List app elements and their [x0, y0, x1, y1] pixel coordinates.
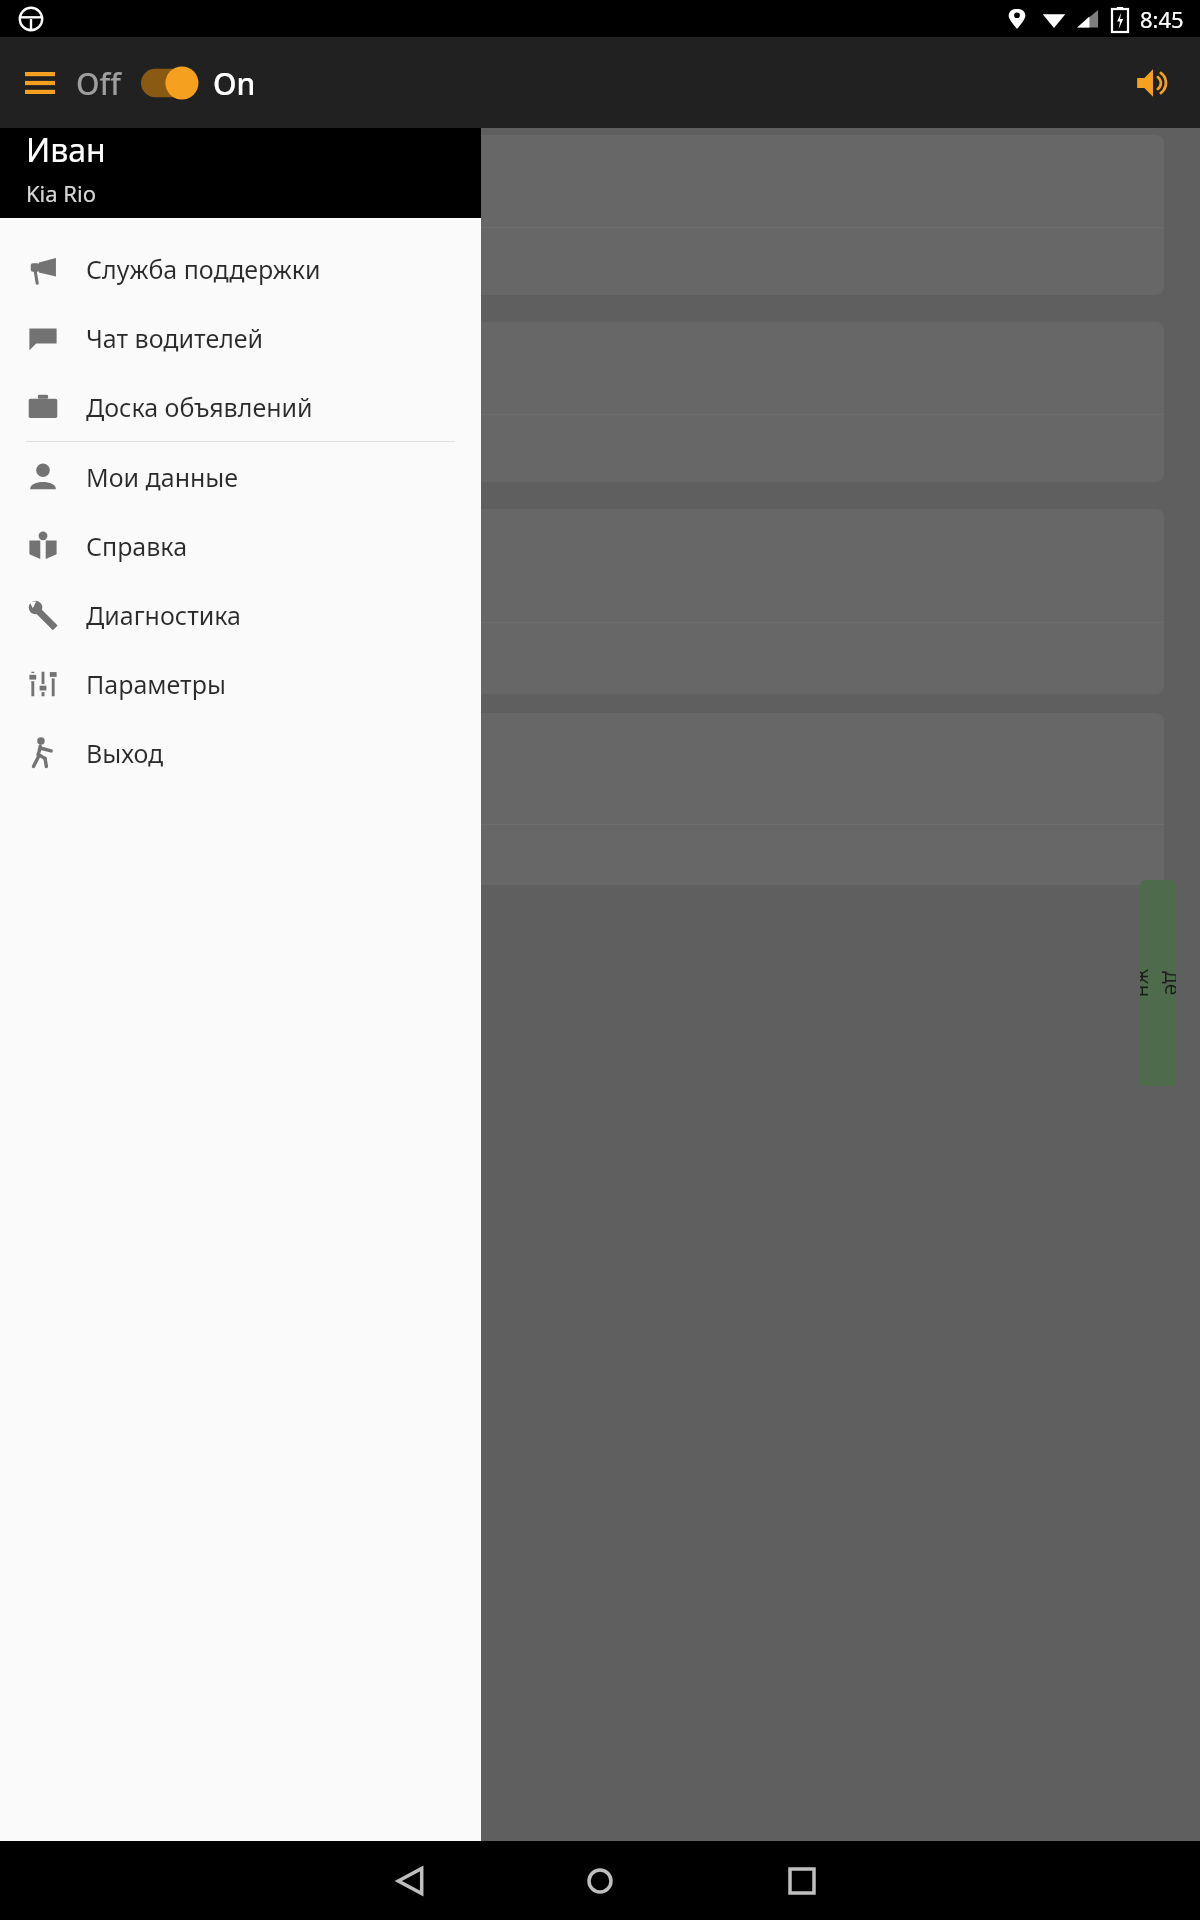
button[interactable]: Sound	[1126, 56, 1180, 110]
button[interactable]: Справка	[0, 511, 481, 580]
staticText: 8:45	[1140, 4, 1184, 34]
staticText: Служба поддержки	[86, 252, 321, 286]
staticText: Иван	[26, 128, 106, 172]
button[interactable]: Служба поддержки	[0, 234, 481, 303]
button[interactable]: Параметры	[0, 649, 481, 718]
staticText: Off	[76, 63, 121, 104]
button[interactable]: Чат водителей	[0, 303, 481, 372]
button[interactable]: езд	[0, 135, 1164, 295]
staticText: Чат водителей	[86, 321, 264, 355]
staticText: Выход	[86, 736, 164, 770]
staticText: Справка	[86, 529, 188, 563]
staticText: Kia Rio	[26, 178, 97, 206]
button[interactable]: Open navigation drawer	[18, 61, 62, 105]
button[interactable]	[0, 322, 1164, 482]
button[interactable]: Recent apps	[772, 1851, 832, 1911]
button[interactable]: Выход	[0, 718, 481, 787]
button[interactable]: Диагностика	[0, 580, 481, 649]
staticText: Параметры	[86, 667, 226, 701]
button[interactable]: Мои данные	[0, 442, 481, 511]
staticText: On	[213, 63, 256, 104]
staticText: Диагностика	[86, 598, 241, 632]
button[interactable]: Home	[570, 1851, 630, 1911]
button[interactable]	[0, 713, 1164, 885]
button[interactable]: надёжный	[1140, 880, 1176, 1086]
staticText: Мои данные	[86, 460, 239, 494]
button[interactable]: Online toggle	[141, 60, 203, 106]
button[interactable]: Доска объявлений	[0, 372, 481, 441]
button[interactable]: Back	[380, 1851, 440, 1911]
staticText: Доска объявлений	[86, 390, 313, 424]
button[interactable]	[0, 509, 1164, 694]
staticText: надёжный	[1140, 965, 1176, 1001]
